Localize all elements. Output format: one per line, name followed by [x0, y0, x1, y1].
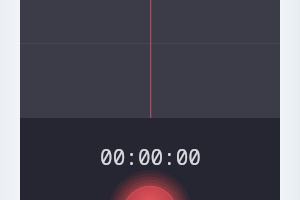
button[interactable]: Record	[124, 186, 176, 200]
button[interactable]: Waveform	[20, 0, 280, 118]
staticText: 00:00:00	[100, 143, 201, 172]
